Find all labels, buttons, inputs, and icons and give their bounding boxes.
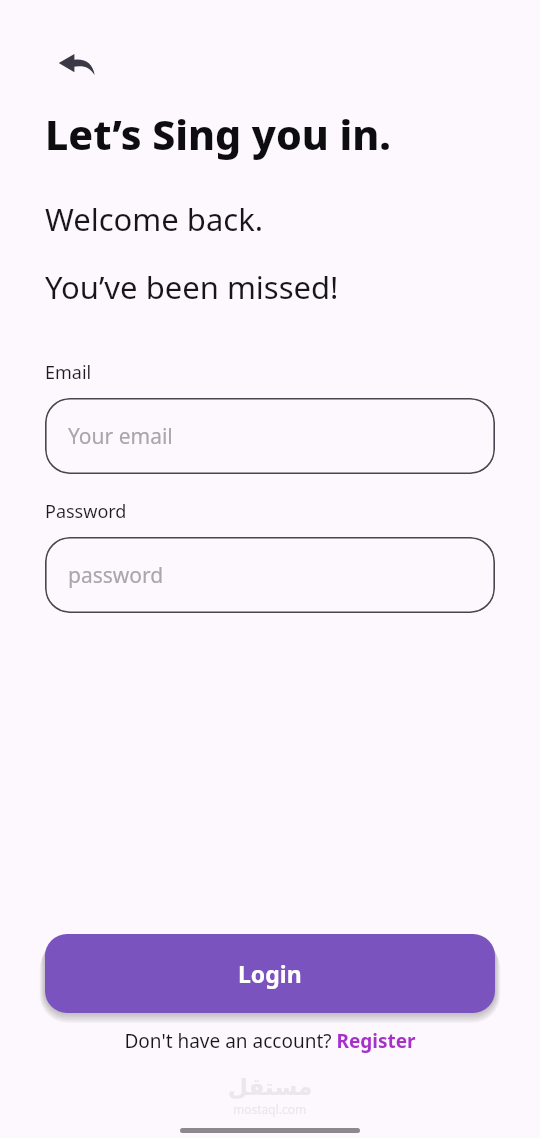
staticText: Login xyxy=(238,958,302,989)
staticText: Your email xyxy=(68,422,173,451)
staticText: Password xyxy=(45,499,127,524)
button[interactable]: Back xyxy=(56,42,102,88)
staticText: مستقل xyxy=(228,1074,313,1101)
button[interactable]: password xyxy=(45,537,495,613)
staticText: Email xyxy=(45,360,92,385)
staticText: Don't have an account? Register xyxy=(124,1028,416,1054)
staticText: Let’s Sing you in. xyxy=(45,106,391,162)
button[interactable]: Login xyxy=(45,934,495,1013)
staticText: You’ve been missed! xyxy=(45,266,339,308)
button[interactable]: Don't have an account? Register xyxy=(124,1028,416,1054)
staticText: mostaql.com xyxy=(233,1101,307,1117)
staticText: password xyxy=(68,561,164,590)
staticText: Welcome back. xyxy=(45,198,264,240)
button[interactable]: Your email xyxy=(45,398,495,474)
